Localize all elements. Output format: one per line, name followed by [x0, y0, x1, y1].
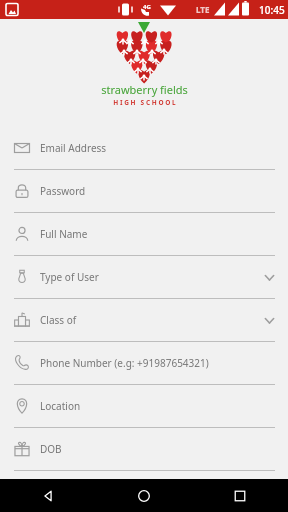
- button[interactable]: Type of User: [0, 256, 288, 299]
- button[interactable]: Full Name: [0, 213, 288, 256]
- staticText: 10:45: [259, 3, 285, 17]
- staticText: strawberry fields: [101, 82, 188, 97]
- button[interactable]: Recent apps: [192, 479, 288, 512]
- button[interactable]: DOB: [0, 428, 288, 471]
- staticText: Type of User: [40, 270, 263, 284]
- button[interactable]: Location: [0, 385, 288, 428]
- staticText: H I G H S C H O O L: [113, 98, 176, 107]
- staticText: Email Address: [40, 141, 276, 155]
- button[interactable]: Phone Number (e.g: +91987654321): [0, 342, 288, 385]
- button[interactable]: Home: [96, 479, 192, 512]
- staticText: LTE: [196, 4, 210, 15]
- staticText: Phone Number (e.g: +91987654321): [40, 356, 276, 370]
- staticText: Password: [40, 184, 276, 198]
- staticText: Class of: [40, 313, 263, 327]
- button[interactable]: Password: [0, 170, 288, 213]
- staticText: Full Name: [40, 227, 276, 241]
- button[interactable]: Class of: [0, 299, 288, 342]
- staticText: Location: [40, 399, 276, 413]
- staticText: 4G: [143, 3, 151, 11]
- staticText: DOB: [40, 442, 276, 456]
- button[interactable]: Back: [0, 479, 96, 512]
- button[interactable]: Email Address: [0, 127, 288, 170]
